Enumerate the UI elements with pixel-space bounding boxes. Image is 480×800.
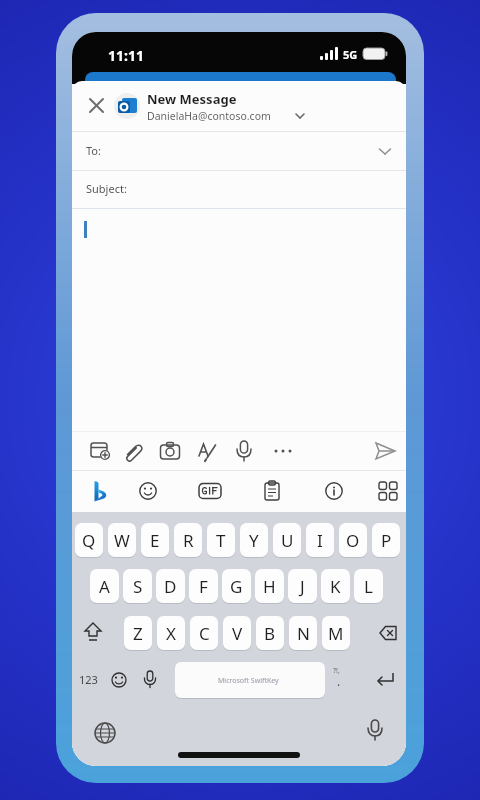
staticText: T [216, 529, 226, 552]
staticText: H [263, 575, 276, 598]
button[interactable]: H [255, 569, 284, 603]
button[interactable] [78, 616, 108, 650]
staticText: E [150, 529, 160, 552]
button[interactable] [119, 437, 147, 465]
button[interactable] [371, 437, 399, 465]
button[interactable] [230, 437, 258, 465]
button[interactable] [108, 662, 130, 698]
button[interactable]: Y [240, 523, 268, 557]
staticText: L [364, 575, 373, 598]
staticText: F [199, 575, 208, 598]
button[interactable]: C [190, 616, 218, 650]
button[interactable]: K [321, 569, 350, 603]
button[interactable]: Subject: [72, 171, 406, 208]
button[interactable] [374, 477, 402, 505]
button[interactable]: R [174, 523, 202, 557]
button[interactable]: U [273, 523, 301, 557]
staticText: W [114, 529, 130, 552]
staticText: R [183, 529, 194, 552]
staticText: D [164, 575, 177, 598]
button[interactable] [370, 616, 402, 650]
staticText: V [232, 622, 243, 645]
button[interactable]: J [288, 569, 317, 603]
staticText: I [317, 529, 323, 552]
staticText: 5G [343, 47, 358, 62]
staticText: J [300, 575, 305, 598]
staticText: B [264, 622, 276, 645]
button[interactable]: A [90, 569, 119, 603]
staticText: G [230, 575, 243, 598]
staticText: 11:11 [108, 46, 144, 65]
staticText: Microsoft SwiftKey [218, 676, 279, 686]
button[interactable]: B [256, 616, 284, 650]
button[interactable] [269, 437, 297, 465]
staticText: O [346, 529, 360, 552]
button[interactable]: P [372, 523, 400, 557]
button[interactable] [156, 437, 184, 465]
button[interactable] [362, 716, 388, 748]
button[interactable] [368, 662, 402, 698]
button[interactable]: New Message [147, 90, 322, 124]
button[interactable]: Q [75, 523, 103, 557]
button[interactable]: X [157, 616, 185, 650]
staticText: 123 [79, 672, 98, 687]
button[interactable]: 123 [74, 662, 104, 698]
button[interactable] [134, 477, 162, 505]
staticText: New Message [147, 90, 237, 108]
button[interactable]: E [141, 523, 169, 557]
staticText: DanielaHa@contoso.com [147, 109, 271, 123]
button[interactable]: W [108, 523, 136, 557]
staticText: X [166, 622, 176, 645]
button[interactable]: Z [124, 616, 152, 650]
staticText: U [281, 529, 294, 552]
button[interactable]: V [223, 616, 251, 650]
button[interactable]: F [189, 569, 218, 603]
staticText: M [328, 622, 344, 645]
button[interactable] [196, 477, 224, 505]
button[interactable] [320, 477, 348, 505]
button[interactable]: L [354, 569, 383, 603]
staticText: P [381, 529, 392, 552]
button[interactable]: To: [72, 132, 406, 170]
staticText: To: [86, 143, 101, 158]
staticText: ?!, [333, 666, 340, 676]
staticText: S [133, 575, 143, 598]
button[interactable]: S [123, 569, 152, 603]
button[interactable]: T [207, 523, 235, 557]
button[interactable]: I [306, 523, 334, 557]
button[interactable] [193, 437, 221, 465]
button[interactable]: O [339, 523, 367, 557]
button[interactable] [258, 477, 286, 505]
staticText: Z [133, 622, 143, 645]
staticText: A [99, 575, 110, 598]
button[interactable] [84, 93, 109, 118]
button[interactable] [86, 437, 114, 465]
button[interactable]: D [156, 569, 185, 603]
staticText: . [337, 673, 341, 689]
button[interactable] [86, 477, 114, 505]
staticText: Q [82, 529, 96, 552]
button[interactable]: N [289, 616, 317, 650]
button[interactable]: Microsoft SwiftKey [175, 662, 325, 698]
staticText: Y [249, 529, 259, 552]
button[interactable] [139, 662, 161, 698]
button[interactable]: M [322, 616, 350, 650]
staticText: C [199, 622, 210, 645]
button[interactable]: G [222, 569, 251, 603]
staticText: K [330, 575, 341, 598]
button[interactable] [90, 718, 120, 748]
staticText: N [297, 622, 310, 645]
staticText: Subject: [86, 181, 127, 196]
